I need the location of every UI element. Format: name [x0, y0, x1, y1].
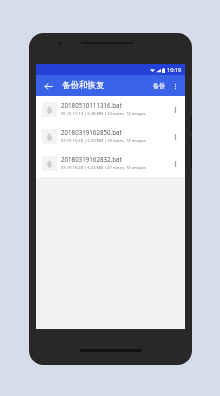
button[interactable]: Item menu [170, 131, 181, 142]
staticText: 20180319162850.bat [61, 128, 122, 136]
staticText: 20180319162832.bat [61, 155, 122, 163]
staticText: 备份和恢复 [62, 80, 105, 91]
button[interactable]: Back [40, 78, 56, 94]
button[interactable]: 20180319162850.bat [36, 123, 185, 150]
button[interactable]: Item menu [170, 158, 181, 169]
staticText: 03.19 16:28 | 6.39 MB | 29 notes, 14 ima… [61, 138, 146, 144]
button[interactable]: 备份 [151, 79, 167, 93]
button[interactable]: Item menu [170, 104, 181, 115]
staticText: 20180510111316.bat [61, 101, 122, 109]
button[interactable]: More options [169, 80, 181, 92]
button[interactable]: 20180510111316.bat [36, 96, 185, 123]
button[interactable]: 20180319162832.bat [36, 150, 185, 177]
staticText: 05.10 11:13 | 6.38 MB | 22 notes, 14 ima… [61, 111, 146, 117]
staticText: 备份 [153, 82, 165, 90]
staticText: 03.19 16:28 | 6.43 MB | 47 notes, 14 ima… [61, 165, 146, 171]
staticText: 10:19 [167, 66, 182, 74]
